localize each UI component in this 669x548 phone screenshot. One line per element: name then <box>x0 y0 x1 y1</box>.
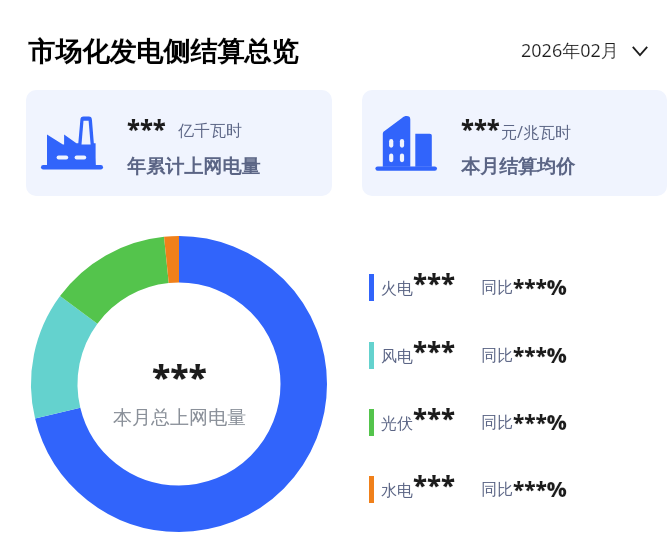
staticText: *** <box>413 333 455 361</box>
button[interactable]: 2026年02月 <box>513 30 656 71</box>
staticText: ***% <box>513 341 567 369</box>
staticText: *** <box>461 112 500 145</box>
button[interactable]: *** <box>362 90 667 196</box>
staticText: 同比 <box>481 480 513 500</box>
staticText: 亿千瓦时 <box>178 121 242 141</box>
staticText: 水电 <box>381 481 413 501</box>
staticText: 风电 <box>381 347 413 367</box>
staticText: 同比 <box>481 278 513 298</box>
staticText: ***% <box>513 273 567 301</box>
staticText: 市场化发电侧结算总览 <box>28 35 298 69</box>
staticText: *** <box>413 467 455 495</box>
button[interactable]: 光伏 <box>369 409 579 437</box>
staticText: ***% <box>513 475 567 503</box>
staticText: *** <box>127 112 166 145</box>
button[interactable]: 水电 <box>369 476 579 504</box>
staticText: *** <box>152 354 207 400</box>
staticText: ***% <box>513 408 567 436</box>
staticText: *** <box>413 265 455 293</box>
other: Select month <box>632 46 648 56</box>
staticText: 火电 <box>381 279 413 299</box>
staticText: *** <box>413 400 455 428</box>
button[interactable]: *** <box>26 90 332 196</box>
button[interactable]: 火电 <box>369 274 579 302</box>
staticText: 本月结算均价 <box>461 155 575 179</box>
staticText: 本月总上网电量 <box>113 406 246 430</box>
staticText: 元/兆瓦时 <box>501 121 571 143</box>
staticText: 同比 <box>481 413 513 433</box>
staticText: 2026年02月 <box>521 38 619 63</box>
staticText: 光伏 <box>381 414 413 434</box>
staticText: 同比 <box>481 346 513 366</box>
button[interactable]: 风电 <box>369 342 579 370</box>
staticText: 年累计上网电量 <box>127 155 260 179</box>
